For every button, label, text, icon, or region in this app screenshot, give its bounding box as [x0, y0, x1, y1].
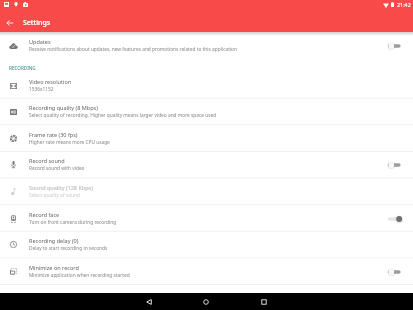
staticText: Delay to start recording in seconds	[29, 245, 108, 252]
button[interactable]: Navigate up	[0, 13, 20, 32]
button[interactable]: Recent apps	[245, 293, 283, 310]
staticText: Updates	[29, 38, 51, 45]
button[interactable]: Record sound	[0, 151, 413, 178]
button[interactable]: Minimize on record	[0, 258, 413, 285]
button[interactable]: Frame rate (30 fps)	[0, 125, 413, 152]
staticText: Record sound	[29, 157, 65, 164]
staticText: Turn on front camera during recording	[29, 219, 117, 226]
button[interactable]: Record face	[386, 205, 413, 232]
staticText: Frame rate (30 fps)	[29, 131, 78, 138]
button[interactable]: Home	[187, 293, 225, 310]
staticText: Recording quality (8 Mbps)	[29, 104, 98, 111]
staticText: Recording delay (0)	[29, 237, 79, 244]
staticText: Settings	[23, 18, 51, 28]
button[interactable]: Recording delay (0)	[0, 231, 413, 258]
button[interactable]: Record face	[0, 205, 413, 232]
button[interactable]: Recording quality (8 Mbps)	[0, 98, 413, 125]
staticText: Higher rate means more CPU usage	[29, 139, 110, 146]
button[interactable]: Video resolution	[0, 72, 413, 99]
staticText: Record face	[29, 211, 60, 218]
staticText: Sound quality (128 Kbps)	[29, 184, 93, 191]
button[interactable]: Minimize on record	[386, 258, 413, 285]
staticText: 21:42	[397, 1, 411, 8]
staticText: Minimize on record	[29, 264, 79, 271]
button[interactable]: Updates	[0, 32, 413, 59]
staticText: Minimize application when recording star…	[29, 272, 130, 279]
staticText: Select quality of recording. Higher qual…	[29, 112, 217, 119]
staticText: Video resolution	[29, 78, 72, 85]
button[interactable]: Back	[130, 293, 168, 310]
button[interactable]: Record sound	[386, 151, 413, 178]
staticText: Record sound with video	[29, 165, 85, 172]
staticText: Receive notifications about updates, new…	[29, 46, 237, 53]
staticText: RECORDING	[9, 65, 36, 71]
button[interactable]: Sound quality (128 Kbps)	[0, 178, 413, 205]
staticText: Select quality of sound	[29, 192, 80, 199]
staticText: 1536x1152	[29, 86, 54, 93]
button[interactable]: Updates	[386, 32, 413, 59]
